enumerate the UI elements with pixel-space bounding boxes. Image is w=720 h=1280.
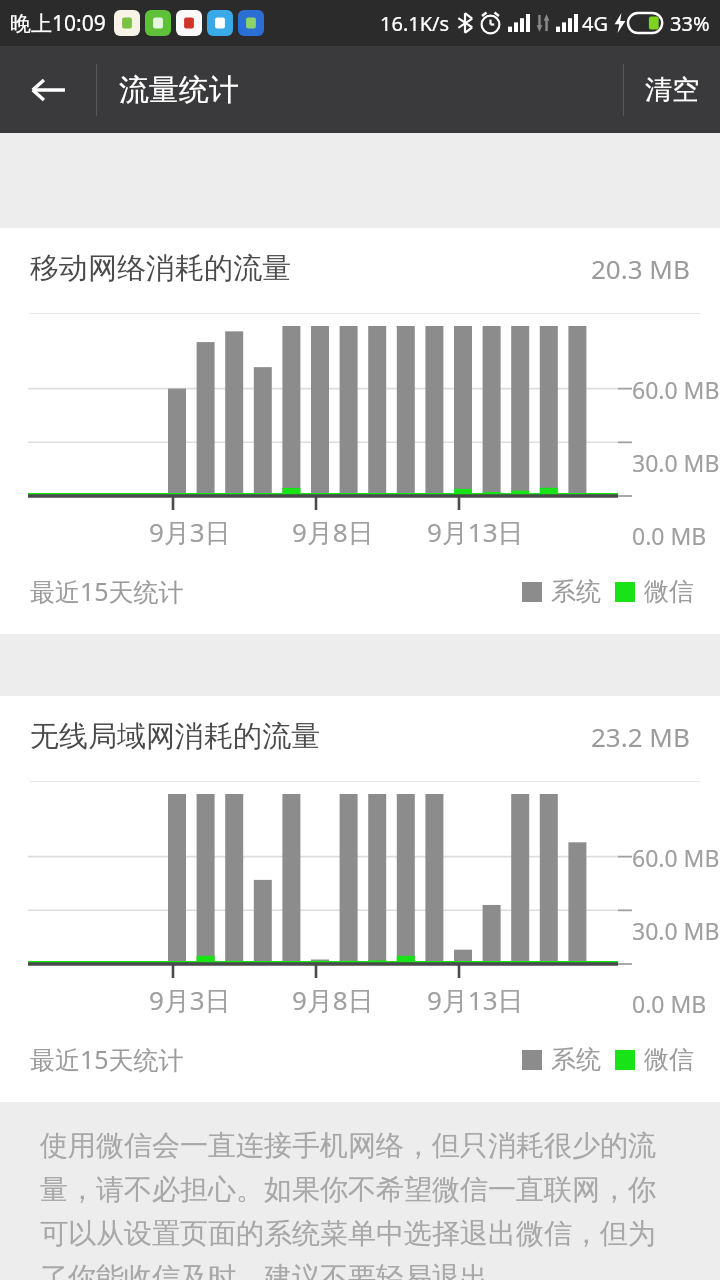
staticText: 清空 — [645, 73, 699, 107]
staticText: 系统 — [551, 576, 601, 607]
staticText: 0.0 MB — [632, 988, 707, 1019]
staticText: 流量统计 — [119, 71, 239, 109]
staticText: 9月13日 — [427, 514, 524, 550]
staticText: 60.0 MB — [632, 374, 720, 405]
staticText: 30.0 MB — [632, 447, 720, 478]
staticText: 33% — [670, 10, 710, 37]
staticText: 微信 — [644, 576, 694, 607]
staticText: 无线局域网消耗的流量 — [30, 718, 320, 755]
staticText: 晚上10:09 — [10, 9, 106, 38]
staticText: 60.0 MB — [632, 842, 720, 873]
staticText: 系统 — [551, 1044, 601, 1075]
button[interactable]: Back — [0, 46, 96, 133]
staticText: 0.0 MB — [632, 520, 707, 551]
staticText: 最近15天统计 — [30, 1042, 184, 1076]
staticText: 移动网络消耗的流量 — [30, 250, 291, 287]
staticText: 20.3 MB — [591, 251, 690, 286]
staticText: 微信 — [644, 1044, 694, 1075]
staticText: 9月13日 — [427, 982, 524, 1018]
staticText: 30.0 MB — [632, 915, 720, 946]
staticText: 使用微信会一直连接手机网络，但只消耗很少的流量，请不必担心。如果你不希望微信一直… — [40, 1128, 680, 1280]
staticText: 最近15天统计 — [30, 574, 184, 608]
button[interactable]: 清空 — [624, 46, 720, 133]
staticText: 9月3日 — [149, 982, 231, 1018]
staticText: 16.1K/s — [380, 10, 450, 37]
staticText: 9月3日 — [149, 514, 231, 550]
staticText: 9月8日 — [292, 982, 374, 1018]
staticText: 9月8日 — [292, 514, 374, 550]
staticText: 4G — [582, 10, 608, 37]
staticText: 23.2 MB — [591, 719, 690, 754]
